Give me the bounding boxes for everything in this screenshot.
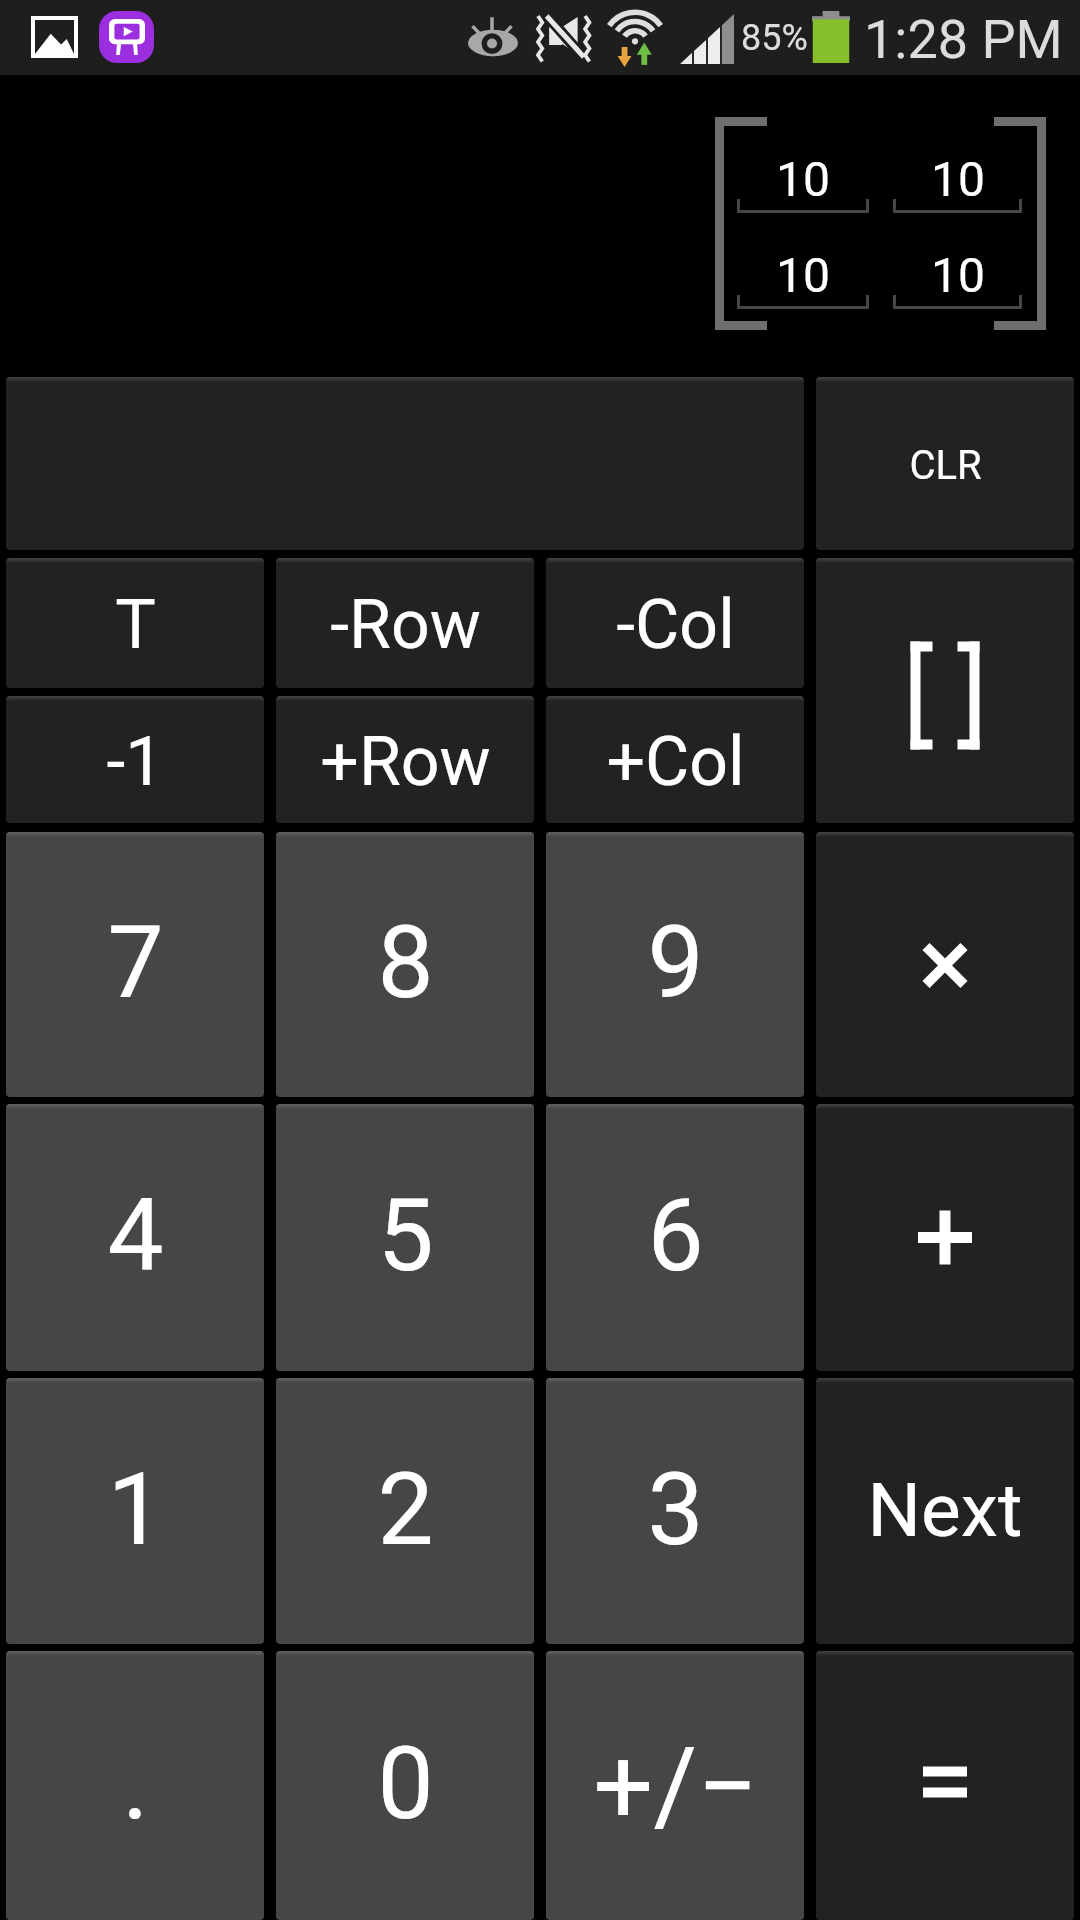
button[interactable]: 6 [546, 1104, 804, 1371]
button[interactable]: 10 [737, 243, 869, 309]
staticText: 9 [647, 904, 704, 1021]
button[interactable]: . [6, 1651, 264, 1920]
button[interactable]: 7 [6, 832, 264, 1097]
button[interactable]: 10 [893, 147, 1022, 213]
button[interactable]: CLR [816, 377, 1074, 550]
staticText: +Row [320, 722, 491, 802]
button[interactable]: Plus minus [546, 1651, 804, 1920]
button[interactable]: 10 [893, 243, 1022, 309]
button[interactable]: Equals [816, 1651, 1074, 1920]
button[interactable]: +Row [276, 696, 534, 823]
staticText: +/− [593, 1725, 758, 1849]
staticText: 10 [776, 247, 830, 303]
staticText: . [122, 1725, 149, 1842]
button[interactable]: 1 [6, 1378, 264, 1644]
staticText: Next [867, 1466, 1023, 1554]
staticText: 5 [377, 1177, 434, 1294]
staticText: 8 [377, 904, 434, 1021]
staticText: -Col [616, 585, 735, 665]
staticText: 2 [377, 1451, 434, 1568]
staticText: 0 [377, 1725, 434, 1842]
staticText: -Row [330, 585, 481, 665]
staticText: T [115, 585, 156, 665]
staticText: 6 [647, 1177, 704, 1294]
staticText: 1 [107, 1451, 164, 1568]
staticText: 7 [107, 904, 164, 1021]
button[interactable]: 10 [737, 147, 869, 213]
staticText: +Col [606, 722, 745, 802]
staticText: 4 [107, 1177, 164, 1294]
staticText: 1:28 PM [864, 8, 1063, 66]
button[interactable]: 8 [276, 832, 534, 1097]
button[interactable]: 4 [6, 1104, 264, 1371]
staticText: 10 [776, 151, 830, 207]
button[interactable]: -1 [6, 696, 264, 823]
button[interactable]: -Row [276, 558, 534, 688]
staticText: 3 [647, 1451, 704, 1568]
staticText: -1 [106, 722, 164, 802]
button[interactable]: 2 [276, 1378, 534, 1644]
button[interactable]: Next [816, 1378, 1074, 1644]
button[interactable]: Multiply [816, 832, 1074, 1097]
staticText: 10 [931, 151, 985, 207]
button[interactable]: Expression display [6, 377, 804, 550]
button[interactable]: T [6, 558, 264, 688]
button[interactable]: 0 [276, 1651, 534, 1920]
button[interactable]: Brackets [816, 558, 1074, 823]
button[interactable]: 3 [546, 1378, 804, 1644]
button[interactable]: -Col [546, 558, 804, 688]
button[interactable]: Add [816, 1104, 1074, 1371]
button[interactable]: +Col [546, 696, 804, 823]
staticText: CLR [909, 442, 982, 489]
staticText: 10 [931, 247, 985, 303]
button[interactable]: 5 [276, 1104, 534, 1371]
button[interactable]: 9 [546, 832, 804, 1097]
staticText: 85% [741, 17, 808, 59]
